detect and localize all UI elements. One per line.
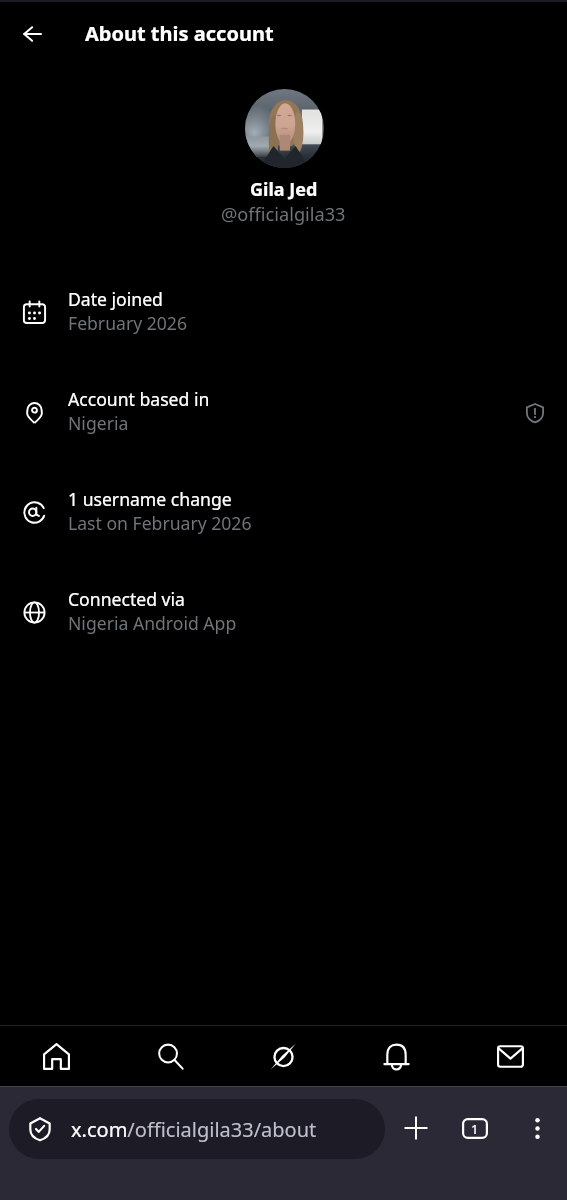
button[interactable]: More options	[515, 1106, 559, 1150]
button[interactable]: Home	[0, 1026, 113, 1086]
button[interactable]: Address bar	[9, 1099, 385, 1159]
button[interactable]: Profile photo	[245, 89, 324, 168]
button[interactable]: Connected via	[0, 588, 567, 688]
staticText: Date joined	[68, 287, 163, 311]
staticText: Last on February 2026	[68, 511, 252, 535]
button[interactable]: About this information	[513, 391, 557, 435]
staticText: Nigeria Android App	[68, 611, 237, 635]
staticText: About this account	[85, 20, 274, 47]
button[interactable]: New tab	[394, 1106, 438, 1150]
button[interactable]: Notifications	[340, 1026, 453, 1086]
button[interactable]: Messages	[454, 1026, 567, 1086]
staticText: 1 username change	[68, 487, 232, 511]
button[interactable]: Search	[114, 1026, 227, 1086]
staticText: Account based in	[68, 387, 210, 411]
staticText: Connected via	[68, 587, 185, 611]
staticText: Nigeria	[68, 411, 129, 435]
button[interactable]: Back	[11, 12, 54, 55]
staticText: Gila Jed	[250, 177, 318, 202]
staticText: February 2026	[68, 311, 187, 335]
button[interactable]: Grok	[227, 1026, 340, 1086]
button[interactable]: Tabs: 1 open	[453, 1106, 497, 1150]
button[interactable]: 1 username change	[0, 488, 567, 588]
staticText: x.com/officialgila33/about	[71, 1116, 317, 1143]
staticText: 1	[471, 1120, 479, 1138]
staticText: @officialgila33	[221, 202, 346, 227]
button[interactable]: Date joined	[0, 288, 567, 388]
button[interactable]: Account based in	[0, 388, 567, 488]
